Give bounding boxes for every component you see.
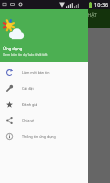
button[interactable]: Cài đặt	[0, 80, 88, 96]
staticText: CẬP NHẬT	[73, 12, 97, 19]
button[interactable]: Làm mới bản tin	[0, 64, 88, 80]
staticText: 10:36	[94, 1, 109, 9]
button[interactable]: Thông tin ứng dụng	[0, 128, 88, 144]
button[interactable]: Đánh giá	[0, 96, 88, 112]
staticText: Chia sẻ	[22, 118, 35, 123]
staticText: Xem bản tin dự báo thời tiết	[3, 52, 48, 57]
staticText: Cài đặt	[22, 86, 34, 91]
staticText: Thông tin ứng dụng	[22, 134, 56, 139]
button[interactable]: Chia sẻ	[0, 112, 88, 128]
staticText: Ứng dụng	[3, 46, 23, 51]
staticText: Đánh giá	[22, 102, 38, 107]
staticText: Làm mới bản tin	[22, 70, 50, 75]
